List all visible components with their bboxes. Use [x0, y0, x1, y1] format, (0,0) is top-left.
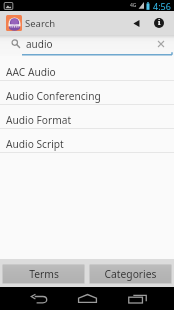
staticText: Audio Conferencing: [6, 89, 101, 103]
button[interactable]: Back: [19, 287, 59, 310]
button[interactable]: Home: [67, 287, 107, 310]
button[interactable]: Audio Script: [0, 129, 174, 153]
staticText: Terms: [29, 267, 59, 281]
staticText: 4:56: [153, 0, 171, 11]
button[interactable]: Clear: [150, 35, 172, 52]
staticText: Audio Script: [6, 137, 64, 151]
button[interactable]: Recents: [117, 287, 157, 310]
staticText: Categories: [104, 267, 157, 281]
button[interactable]: Audio Conferencing: [0, 81, 174, 105]
staticText: Audio Format: [6, 113, 72, 127]
button[interactable]: Terms: [3, 265, 84, 283]
staticText: i: [158, 18, 161, 28]
staticText: 4G: [130, 2, 137, 9]
button[interactable]: Info: [149, 11, 169, 35]
staticText: AAC Audio: [6, 65, 56, 79]
button[interactable]: Categories: [90, 265, 171, 283]
button[interactable]: App icon: [6, 15, 22, 31]
staticText: Search: [25, 17, 56, 30]
button[interactable]: Audio Format: [0, 105, 174, 129]
button[interactable]: AAC Audio: [0, 57, 174, 81]
button[interactable]: Previous: [124, 11, 149, 35]
staticText: audio: [26, 37, 53, 51]
